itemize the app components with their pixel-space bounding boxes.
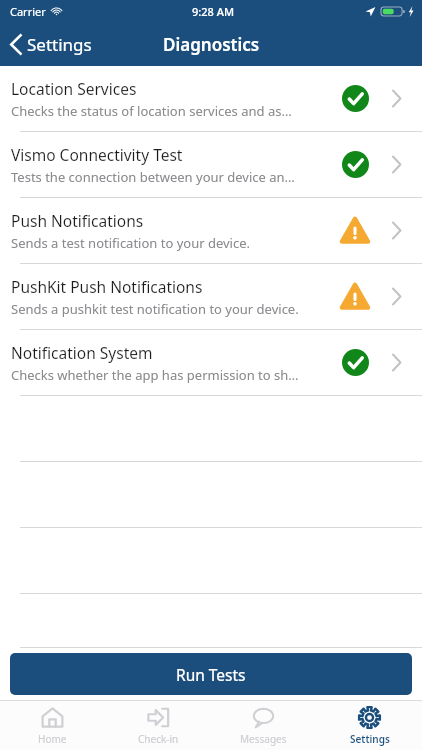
staticText: Carrier xyxy=(10,4,46,19)
button[interactable]: Vismo Connectivity Test xyxy=(0,132,422,198)
staticText: 9:28 AM xyxy=(192,4,235,19)
button[interactable]: Messages xyxy=(211,701,316,750)
staticText: Home xyxy=(38,732,67,746)
staticText: Messages xyxy=(240,732,287,746)
button[interactable]: Home xyxy=(0,701,105,750)
staticText: Settings xyxy=(27,33,92,56)
button[interactable]: Notification System xyxy=(0,330,422,396)
staticText: Checks the status of location services a… xyxy=(11,102,292,120)
staticText: Settings xyxy=(350,732,390,746)
staticText: PushKit Push Notifications xyxy=(11,276,203,297)
button[interactable]: Settings xyxy=(0,27,104,62)
staticText: Diagnostics xyxy=(163,33,260,56)
button[interactable]: PushKit Push Notifications xyxy=(0,264,422,330)
button[interactable]: Settings xyxy=(317,701,422,750)
button[interactable]: Run Tests xyxy=(10,653,412,695)
button[interactable]: Push Notifications xyxy=(0,198,422,264)
staticText: Tests the connection between your device… xyxy=(11,168,295,186)
staticText: Notification System xyxy=(11,342,153,363)
button[interactable]: Check-in xyxy=(106,701,211,750)
staticText: Push Notifications xyxy=(11,210,144,231)
staticText: Location Services xyxy=(11,78,137,99)
staticText: Run Tests xyxy=(176,664,246,685)
staticText: Checks whether the app has permission to… xyxy=(11,366,299,384)
staticText: Sends a pushkit test notification to you… xyxy=(11,300,299,318)
button[interactable]: Location Services xyxy=(0,66,422,132)
staticText: Sends a test notification to your device… xyxy=(11,234,251,252)
staticText: Vismo Connectivity Test xyxy=(11,144,183,165)
staticText: Check-in xyxy=(138,732,179,746)
